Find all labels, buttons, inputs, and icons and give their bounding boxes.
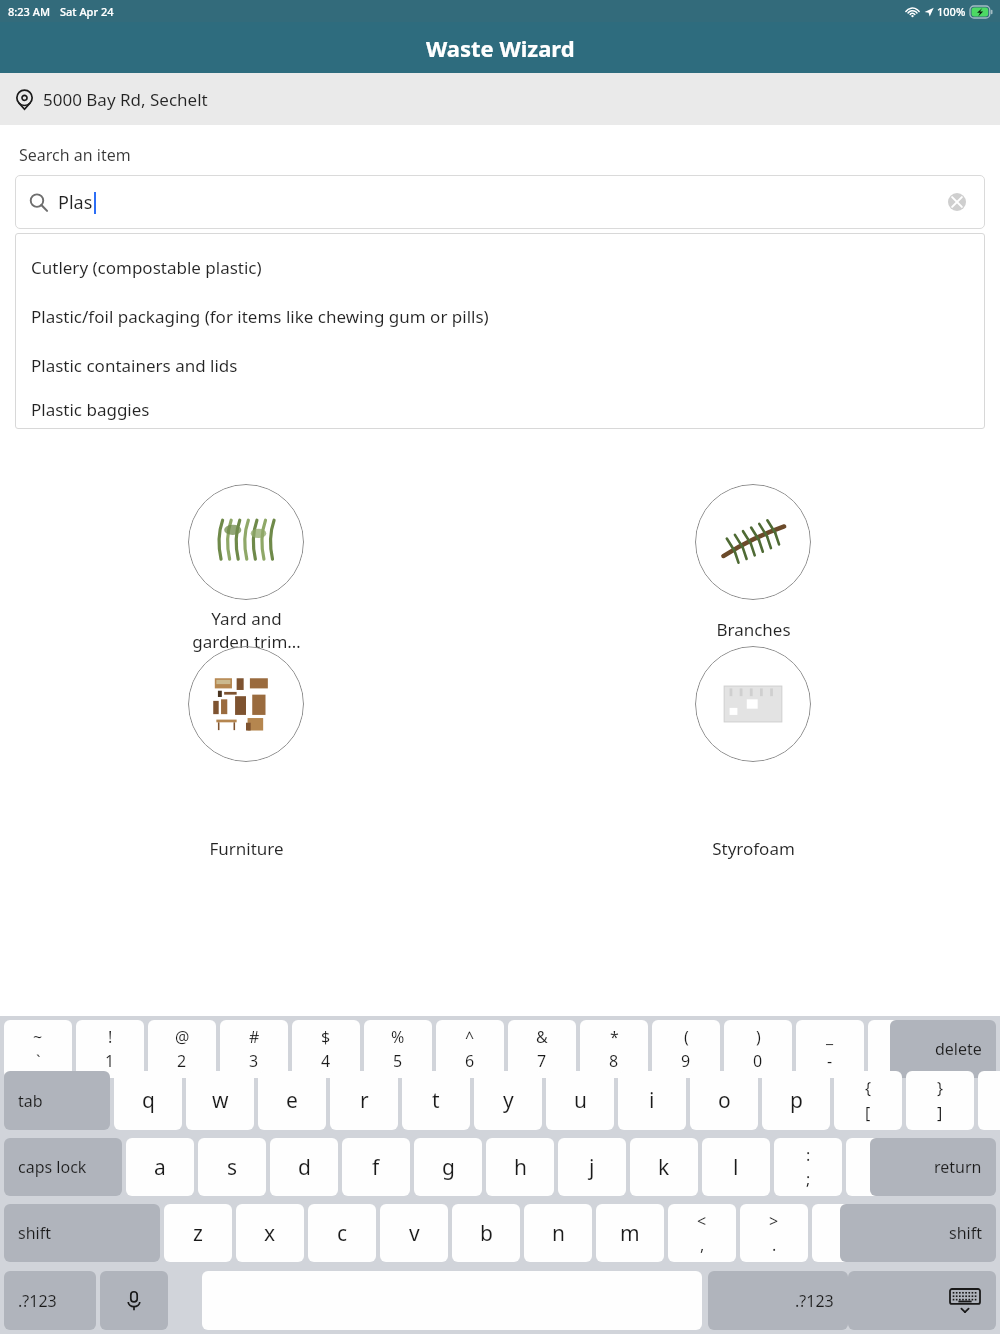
button[interactable]: ! bbox=[76, 1020, 144, 1078]
staticText: 4 bbox=[321, 1050, 331, 1072]
button[interactable]: { bbox=[834, 1071, 902, 1130]
button[interactable]: o bbox=[690, 1071, 758, 1130]
button[interactable]: j bbox=[558, 1138, 626, 1196]
button[interactable]: ( bbox=[652, 1020, 720, 1078]
button[interactable]: _ bbox=[796, 1020, 864, 1078]
button[interactable]: Clear search bbox=[945, 190, 969, 214]
staticText: ^ bbox=[465, 1026, 475, 1048]
button[interactable]: m bbox=[596, 1204, 664, 1262]
button[interactable]: t bbox=[402, 1071, 470, 1130]
staticText: x bbox=[264, 1219, 276, 1248]
button[interactable]: Cutlery (compostable plastic) bbox=[15, 243, 985, 292]
staticText: 8:23 AM bbox=[8, 4, 51, 19]
button[interactable]: delete bbox=[890, 1020, 996, 1078]
staticText: Cutlery (compostable plastic) bbox=[31, 256, 262, 279]
button[interactable]: Hide keyboard bbox=[848, 1271, 996, 1330]
staticText: 2 bbox=[177, 1050, 187, 1072]
button[interactable]: @ bbox=[148, 1020, 216, 1078]
button[interactable]: % bbox=[364, 1020, 432, 1078]
button[interactable]: w bbox=[186, 1071, 254, 1130]
button[interactable]: k bbox=[630, 1138, 698, 1196]
button[interactable]: | bbox=[978, 1071, 1000, 1130]
staticText: Search an item bbox=[19, 144, 131, 166]
staticText: g bbox=[442, 1153, 455, 1182]
button[interactable]: shift bbox=[4, 1204, 160, 1262]
button[interactable]: z bbox=[164, 1204, 232, 1262]
button[interactable]: e bbox=[258, 1071, 326, 1130]
button[interactable]: & bbox=[508, 1020, 576, 1078]
staticText: 5000 Bay Rd, Sechelt bbox=[43, 88, 208, 111]
staticText: 9 bbox=[681, 1050, 691, 1072]
button[interactable]: h bbox=[486, 1138, 554, 1196]
button[interactable]: l bbox=[702, 1138, 770, 1196]
button[interactable]: q bbox=[114, 1071, 182, 1130]
staticText: ; bbox=[806, 1168, 811, 1190]
staticText: a bbox=[154, 1153, 166, 1182]
button[interactable]: c bbox=[308, 1204, 376, 1262]
button[interactable]: ) bbox=[724, 1020, 792, 1078]
button[interactable]: } bbox=[906, 1071, 974, 1130]
staticText: h bbox=[514, 1153, 527, 1182]
button[interactable]: x bbox=[236, 1204, 304, 1262]
button[interactable]: " bbox=[846, 1138, 914, 1196]
button[interactable]: f bbox=[342, 1138, 410, 1196]
staticText: b bbox=[480, 1219, 493, 1248]
staticText: [ bbox=[865, 1102, 871, 1124]
button[interactable]: .?123 bbox=[708, 1271, 848, 1330]
button[interactable]: + bbox=[868, 1020, 936, 1078]
button[interactable]: : bbox=[774, 1138, 842, 1196]
staticText: n bbox=[552, 1219, 565, 1248]
button[interactable] bbox=[695, 484, 811, 600]
button[interactable]: Plastic containers and lids bbox=[15, 341, 985, 390]
staticText: shift bbox=[18, 1222, 51, 1244]
button[interactable]: y bbox=[474, 1071, 542, 1130]
button[interactable]: Plastic baggies bbox=[15, 390, 985, 429]
button[interactable]: return bbox=[870, 1138, 996, 1196]
button[interactable]: $ bbox=[292, 1020, 360, 1078]
staticText: 8 bbox=[609, 1050, 619, 1072]
button[interactable]: b bbox=[452, 1204, 520, 1262]
staticText: t bbox=[432, 1086, 440, 1115]
staticText: caps lock bbox=[18, 1156, 87, 1178]
staticText: @ bbox=[175, 1026, 190, 1048]
button[interactable]: r bbox=[330, 1071, 398, 1130]
button[interactable]: 5000 Bay Rd, Sechelt bbox=[0, 73, 1000, 125]
button[interactable]: ~ bbox=[4, 1020, 72, 1078]
staticText: m bbox=[620, 1219, 640, 1248]
button[interactable]: Plastic/foil packaging (for items like c… bbox=[15, 292, 985, 341]
staticText: < bbox=[697, 1210, 707, 1232]
button[interactable]: g bbox=[414, 1138, 482, 1196]
button[interactable]: p bbox=[762, 1071, 830, 1130]
staticText: 3 bbox=[249, 1050, 259, 1072]
staticText: q bbox=[142, 1086, 155, 1115]
staticText: s bbox=[227, 1153, 238, 1182]
button[interactable]: * bbox=[580, 1020, 648, 1078]
button[interactable]: Plas bbox=[15, 175, 985, 229]
staticText: ) bbox=[756, 1026, 761, 1048]
button[interactable]: > bbox=[740, 1204, 808, 1262]
button[interactable]: tab bbox=[4, 1071, 110, 1130]
button[interactable]: ? bbox=[812, 1204, 880, 1262]
button[interactable]: u bbox=[546, 1071, 614, 1130]
button[interactable]: s bbox=[198, 1138, 266, 1196]
button[interactable]: shift bbox=[840, 1204, 996, 1262]
button[interactable]: i bbox=[618, 1071, 686, 1130]
button[interactable]: # bbox=[220, 1020, 288, 1078]
button[interactable]: d bbox=[270, 1138, 338, 1196]
button[interactable]: v bbox=[380, 1204, 448, 1262]
button[interactable]: .?123 bbox=[4, 1271, 96, 1330]
button[interactable] bbox=[695, 646, 811, 762]
button[interactable]: a bbox=[126, 1138, 194, 1196]
button[interactable] bbox=[188, 646, 304, 762]
button[interactable]: Dictate bbox=[100, 1271, 168, 1330]
button[interactable]: n bbox=[524, 1204, 592, 1262]
button[interactable]: ^ bbox=[436, 1020, 504, 1078]
button[interactable] bbox=[188, 484, 304, 600]
button[interactable]: < bbox=[668, 1204, 736, 1262]
button[interactable]: caps lock bbox=[4, 1138, 122, 1196]
